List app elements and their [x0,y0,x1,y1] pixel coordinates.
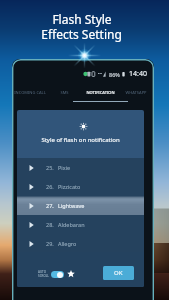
button[interactable]: OK [103,266,134,280]
staticText: Allegro [58,240,77,247]
staticText: 26. [46,183,54,190]
button[interactable]: 27. [17,196,144,215]
button[interactable]: 26. [17,177,144,196]
staticText: 27. [46,202,54,209]
staticText: WHATSAPP [125,90,147,95]
staticText: AUTO [38,270,47,274]
button[interactable]: INCOMING CALL [12,86,47,99]
staticText: OK [114,269,123,277]
button[interactable]: SMS [47,86,82,99]
staticText: Lightwave [58,202,85,209]
staticText: NOTIFICATION [86,90,115,95]
staticText: INCOMING CALL [14,90,46,95]
button[interactable]: Favourite [67,270,75,278]
button[interactable]: 25. [17,158,144,177]
button[interactable]: 28. [17,215,144,234]
button[interactable]: WHATSAPP [118,86,154,99]
button[interactable]: 29. [17,234,144,252]
staticText: Pizzicato [58,183,81,190]
staticText: 14:40 [129,69,147,79]
button[interactable]: Auto scroll toggle [51,271,64,278]
staticText: 29. [46,240,54,247]
staticText: Effects Setting [41,26,122,42]
staticText: SCROLL [38,274,49,278]
staticText: Pixie [58,164,71,171]
staticText: Flash Style [52,11,112,27]
staticText: 25. [46,164,54,171]
button[interactable]: NOTIFICATION [82,86,118,99]
staticText: Aldebaran [58,221,85,228]
staticText: Style of flash on notification [17,136,144,144]
staticText: 28. [46,221,54,228]
staticText: 86% [109,71,120,78]
staticText: SMS [60,90,69,95]
